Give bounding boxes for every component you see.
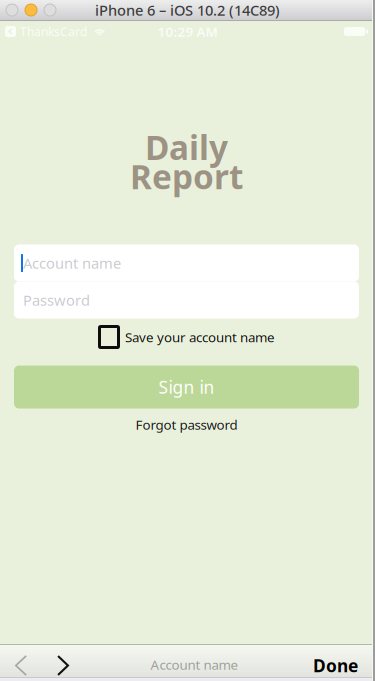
button[interactable]: Done: [313, 644, 375, 681]
staticText: Report: [130, 154, 243, 199]
staticText: iPhone 6 – iOS 10.2 (14C89): [95, 0, 280, 20]
staticText: ThanksCard: [20, 23, 87, 39]
button[interactable]: Forgot password: [135, 414, 237, 434]
button[interactable]: Sign in: [14, 365, 359, 408]
button[interactable]: Save your account name: [98, 325, 275, 348]
button[interactable]: Password: [14, 281, 359, 318]
staticText: Forgot password: [135, 416, 237, 433]
staticText: Save your account name: [125, 328, 275, 346]
staticText: Password: [23, 290, 90, 310]
staticText: Account name: [23, 253, 121, 273]
staticText: Sign in: [158, 375, 214, 398]
button[interactable]: Account name: [14, 244, 359, 281]
staticText: 10:29 AM: [157, 23, 217, 40]
staticText: Account name: [150, 656, 238, 673]
staticText: Daily: [145, 125, 228, 169]
button[interactable]: Next field: [42, 644, 84, 681]
staticText: Done: [313, 654, 358, 677]
button[interactable]: Previous field: [0, 644, 42, 681]
